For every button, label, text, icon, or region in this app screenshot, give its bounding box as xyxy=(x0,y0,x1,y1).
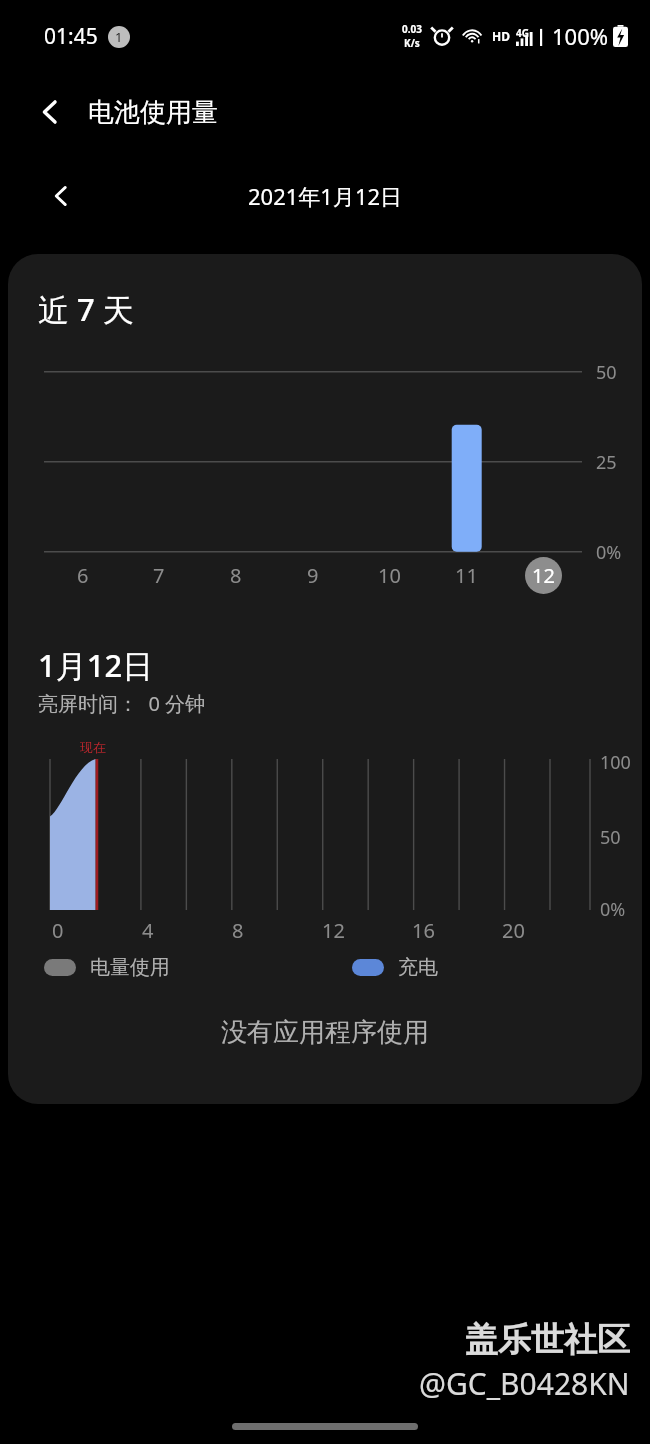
staticText: 充电 xyxy=(398,955,438,980)
staticText: 16 xyxy=(412,917,435,944)
staticText: 20 xyxy=(502,917,525,944)
button[interactable]: 充电 xyxy=(346,949,444,986)
staticText: 近 7 天 xyxy=(38,288,134,330)
staticText: 11 xyxy=(455,562,478,589)
staticText: 电量使用 xyxy=(90,955,170,980)
button[interactable]: 7 xyxy=(140,557,177,594)
staticText: 没有应用程序使用 xyxy=(8,1016,642,1049)
staticText: 4 xyxy=(142,917,154,944)
staticText: 1 xyxy=(115,28,123,46)
staticText: 现在 xyxy=(80,739,106,755)
staticText: 100 xyxy=(600,750,631,775)
staticText: 6 xyxy=(77,562,89,589)
button[interactable]: Back xyxy=(24,86,76,138)
staticText: @GC_B0428KN xyxy=(419,1363,630,1404)
staticText: 9 xyxy=(307,562,319,589)
staticText: 1月12日 xyxy=(38,644,154,686)
staticText: 0% xyxy=(600,897,626,922)
staticText: 100% xyxy=(552,21,609,51)
staticText: 01:45 xyxy=(44,22,98,51)
staticText: 亮屏时间： 0 分钟 xyxy=(38,690,206,717)
staticText: K/s xyxy=(404,36,420,50)
staticText: 2021年1月12日 xyxy=(248,181,403,211)
staticText: 0.03 xyxy=(402,22,422,36)
staticText: 25 xyxy=(596,450,617,475)
staticText: 50 xyxy=(596,360,617,385)
staticText: 10 xyxy=(378,562,401,589)
button[interactable]: 电量使用 xyxy=(38,949,176,986)
button[interactable]: 9 xyxy=(294,557,331,594)
button[interactable]: 8 xyxy=(217,557,254,594)
button[interactable]: Previous day xyxy=(36,171,86,221)
staticText: 0% xyxy=(596,540,622,565)
button[interactable]: 6 xyxy=(64,557,101,594)
staticText: 8 xyxy=(230,562,242,589)
staticText: 0 xyxy=(52,917,64,944)
staticText: 电池使用量 xyxy=(88,96,218,129)
staticText: 8 xyxy=(232,917,244,944)
staticText: 12 xyxy=(322,917,345,944)
button[interactable]: 10 xyxy=(371,557,408,594)
staticText: 12 xyxy=(532,562,555,589)
staticText: 4G xyxy=(516,26,529,40)
staticText: 7 xyxy=(153,562,165,589)
staticText: 50 xyxy=(600,825,621,850)
button[interactable]: 11 xyxy=(448,557,485,594)
staticText: 盖乐世社区 xyxy=(465,1319,630,1361)
button[interactable]: 12 xyxy=(525,557,562,594)
staticText: HD xyxy=(492,28,510,44)
